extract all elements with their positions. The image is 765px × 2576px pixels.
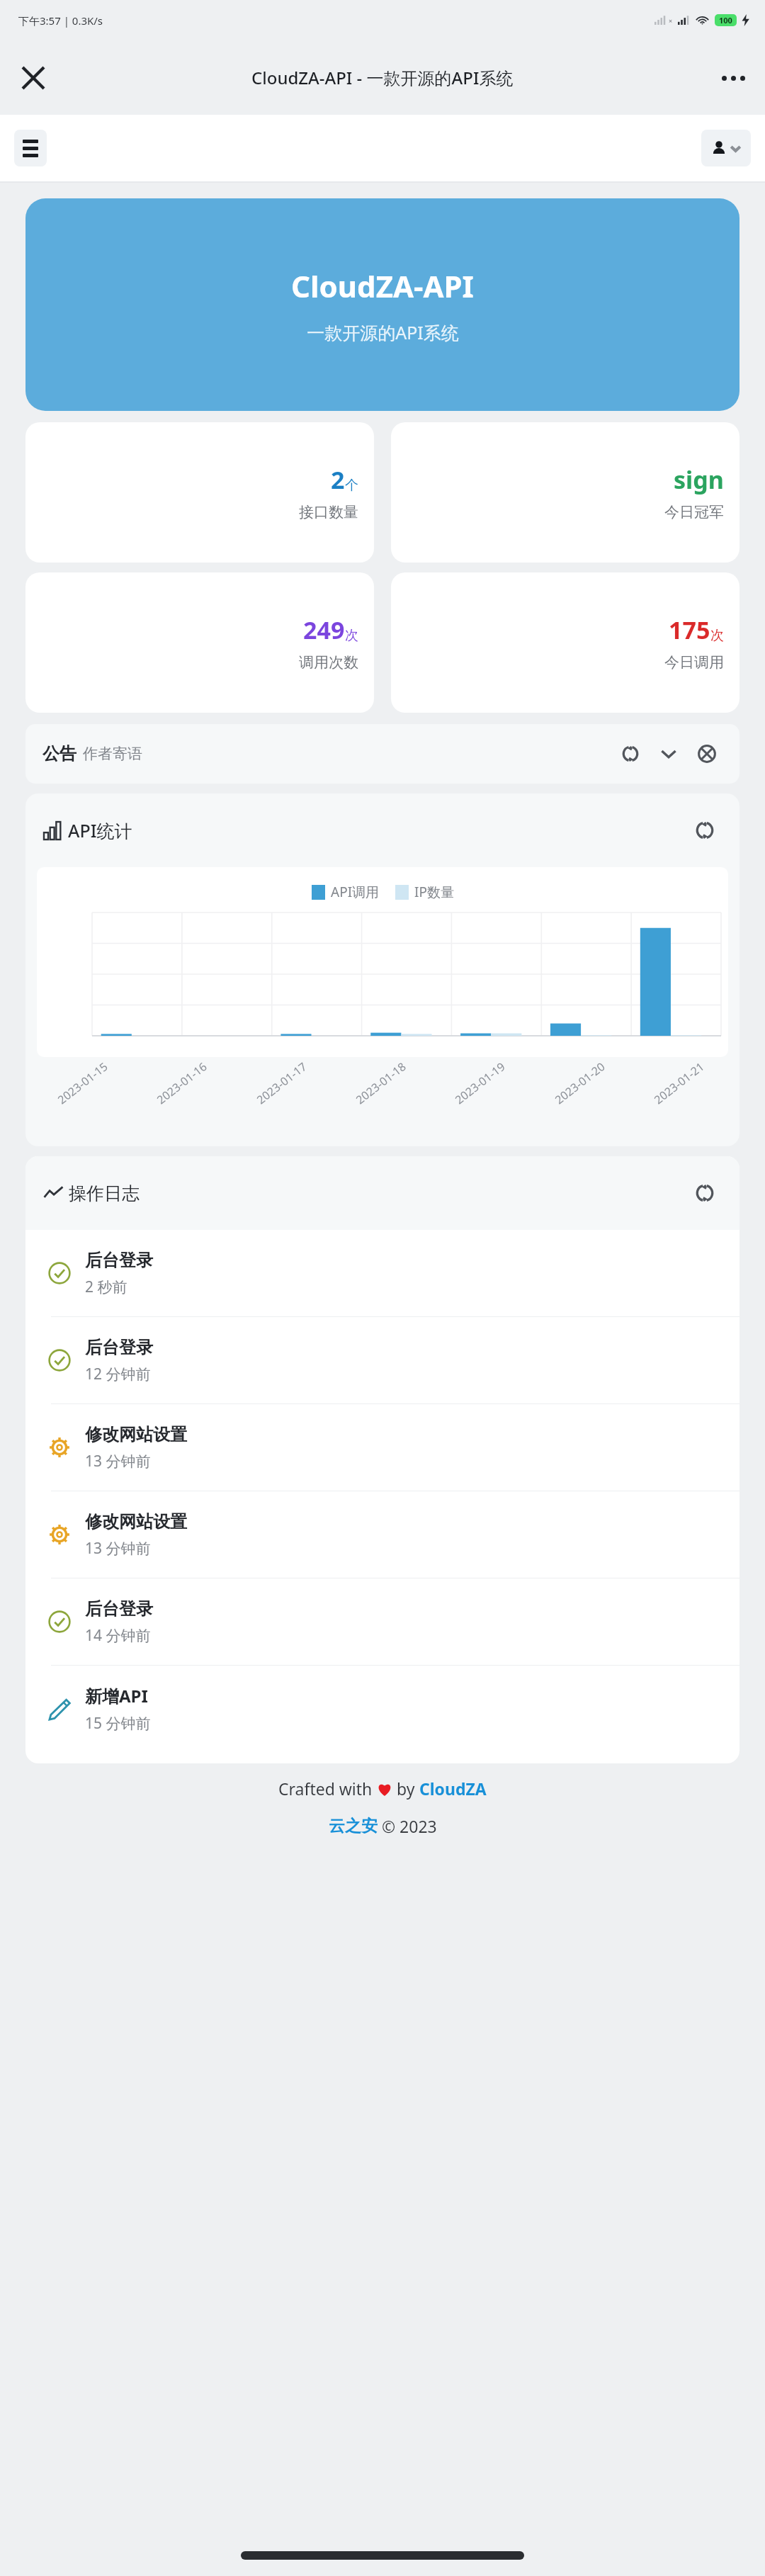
staticText: 一款开源的API系统 bbox=[307, 320, 459, 344]
staticText: 100 bbox=[719, 15, 732, 26]
button[interactable]: More options bbox=[711, 56, 755, 100]
button[interactable]: 修改网站设置 bbox=[25, 1491, 739, 1578]
staticText: 249 bbox=[303, 614, 345, 646]
button[interactable]: 后台登录 bbox=[25, 1230, 739, 1316]
staticText: © 2023 bbox=[378, 1815, 437, 1837]
staticText: 个 bbox=[345, 477, 358, 494]
button[interactable]: Collapse bbox=[653, 738, 684, 769]
staticText: 作者寄语 bbox=[83, 745, 142, 763]
button[interactable]: Refresh bbox=[615, 738, 646, 769]
staticText: 后台登录 bbox=[85, 1337, 153, 1358]
button[interactable]: 后台登录 bbox=[25, 1578, 739, 1665]
staticText: 次 bbox=[710, 627, 724, 644]
staticText: 次 bbox=[345, 627, 358, 644]
staticText: 新增API bbox=[85, 1684, 148, 1707]
button[interactable]: 新增API bbox=[25, 1666, 739, 1752]
staticText: 13 分钟前 bbox=[85, 1538, 151, 1559]
staticText: by bbox=[392, 1778, 419, 1800]
staticText: 2023-01-20 bbox=[552, 1059, 608, 1107]
button[interactable]: 2 bbox=[25, 422, 374, 563]
staticText: 15 分钟前 bbox=[85, 1713, 151, 1734]
button[interactable]: 后台登录 bbox=[25, 1317, 739, 1403]
staticText: 今日调用 bbox=[664, 653, 724, 672]
button[interactable]: Close bbox=[11, 56, 55, 100]
staticText: 操作日志 bbox=[69, 1182, 140, 1204]
staticText: sign bbox=[674, 463, 724, 496]
staticText: CloudZA-API bbox=[291, 266, 474, 306]
button[interactable]: Close announcement bbox=[691, 738, 722, 769]
staticText: 后台登录 bbox=[85, 1598, 153, 1620]
staticText: CloudZA-API - 一款开源的API系统 bbox=[251, 66, 514, 89]
staticText: 2023-01-16 bbox=[154, 1059, 210, 1107]
staticText: 下午3:57 | 0.3K/s bbox=[18, 13, 103, 28]
button[interactable]: CloudZA-API bbox=[25, 198, 739, 411]
button[interactable]: Menu bbox=[14, 130, 47, 166]
staticText: API统计 bbox=[68, 818, 132, 842]
staticText: 2 bbox=[331, 463, 345, 496]
button[interactable]: sign bbox=[391, 422, 739, 563]
staticText: 2023-01-18 bbox=[353, 1059, 409, 1107]
staticText: 2023-01-15 bbox=[54, 1059, 111, 1107]
staticText: 2 秒前 bbox=[85, 1277, 127, 1297]
staticText: 175 bbox=[669, 614, 710, 646]
button[interactable]: 175 bbox=[391, 572, 739, 713]
staticText: 12 分钟前 bbox=[85, 1364, 151, 1384]
button[interactable]: Refresh log bbox=[688, 1177, 721, 1209]
staticText: 今日冠军 bbox=[664, 503, 724, 521]
staticText: 公告 bbox=[42, 743, 76, 764]
button[interactable]: CloudZA bbox=[419, 1778, 487, 1800]
staticText: 调用次数 bbox=[299, 653, 358, 672]
button[interactable]: 249 bbox=[25, 572, 374, 713]
button[interactable]: 公告 bbox=[25, 724, 739, 784]
staticText: 后台登录 bbox=[85, 1250, 153, 1271]
staticText: 14 分钟前 bbox=[85, 1625, 151, 1646]
staticText: IP数量 bbox=[414, 883, 454, 901]
button[interactable]: 修改网站设置 bbox=[25, 1404, 739, 1491]
staticText: 2023-01-21 bbox=[651, 1059, 707, 1107]
button[interactable]: 云之安 bbox=[329, 1816, 378, 1836]
staticText: × bbox=[669, 16, 673, 25]
staticText: 13 分钟前 bbox=[85, 1451, 151, 1471]
staticText: API调用 bbox=[331, 883, 380, 901]
button[interactable]: Refresh chart bbox=[688, 814, 721, 847]
staticText: 接口数量 bbox=[299, 503, 358, 521]
staticText: Crafted with bbox=[278, 1778, 377, 1800]
button[interactable]: Account bbox=[701, 130, 751, 166]
staticText: 2023-01-19 bbox=[452, 1059, 508, 1107]
staticText: 修改网站设置 bbox=[85, 1424, 187, 1445]
staticText: 修改网站设置 bbox=[85, 1511, 187, 1532]
staticText: 2023-01-17 bbox=[254, 1059, 310, 1107]
